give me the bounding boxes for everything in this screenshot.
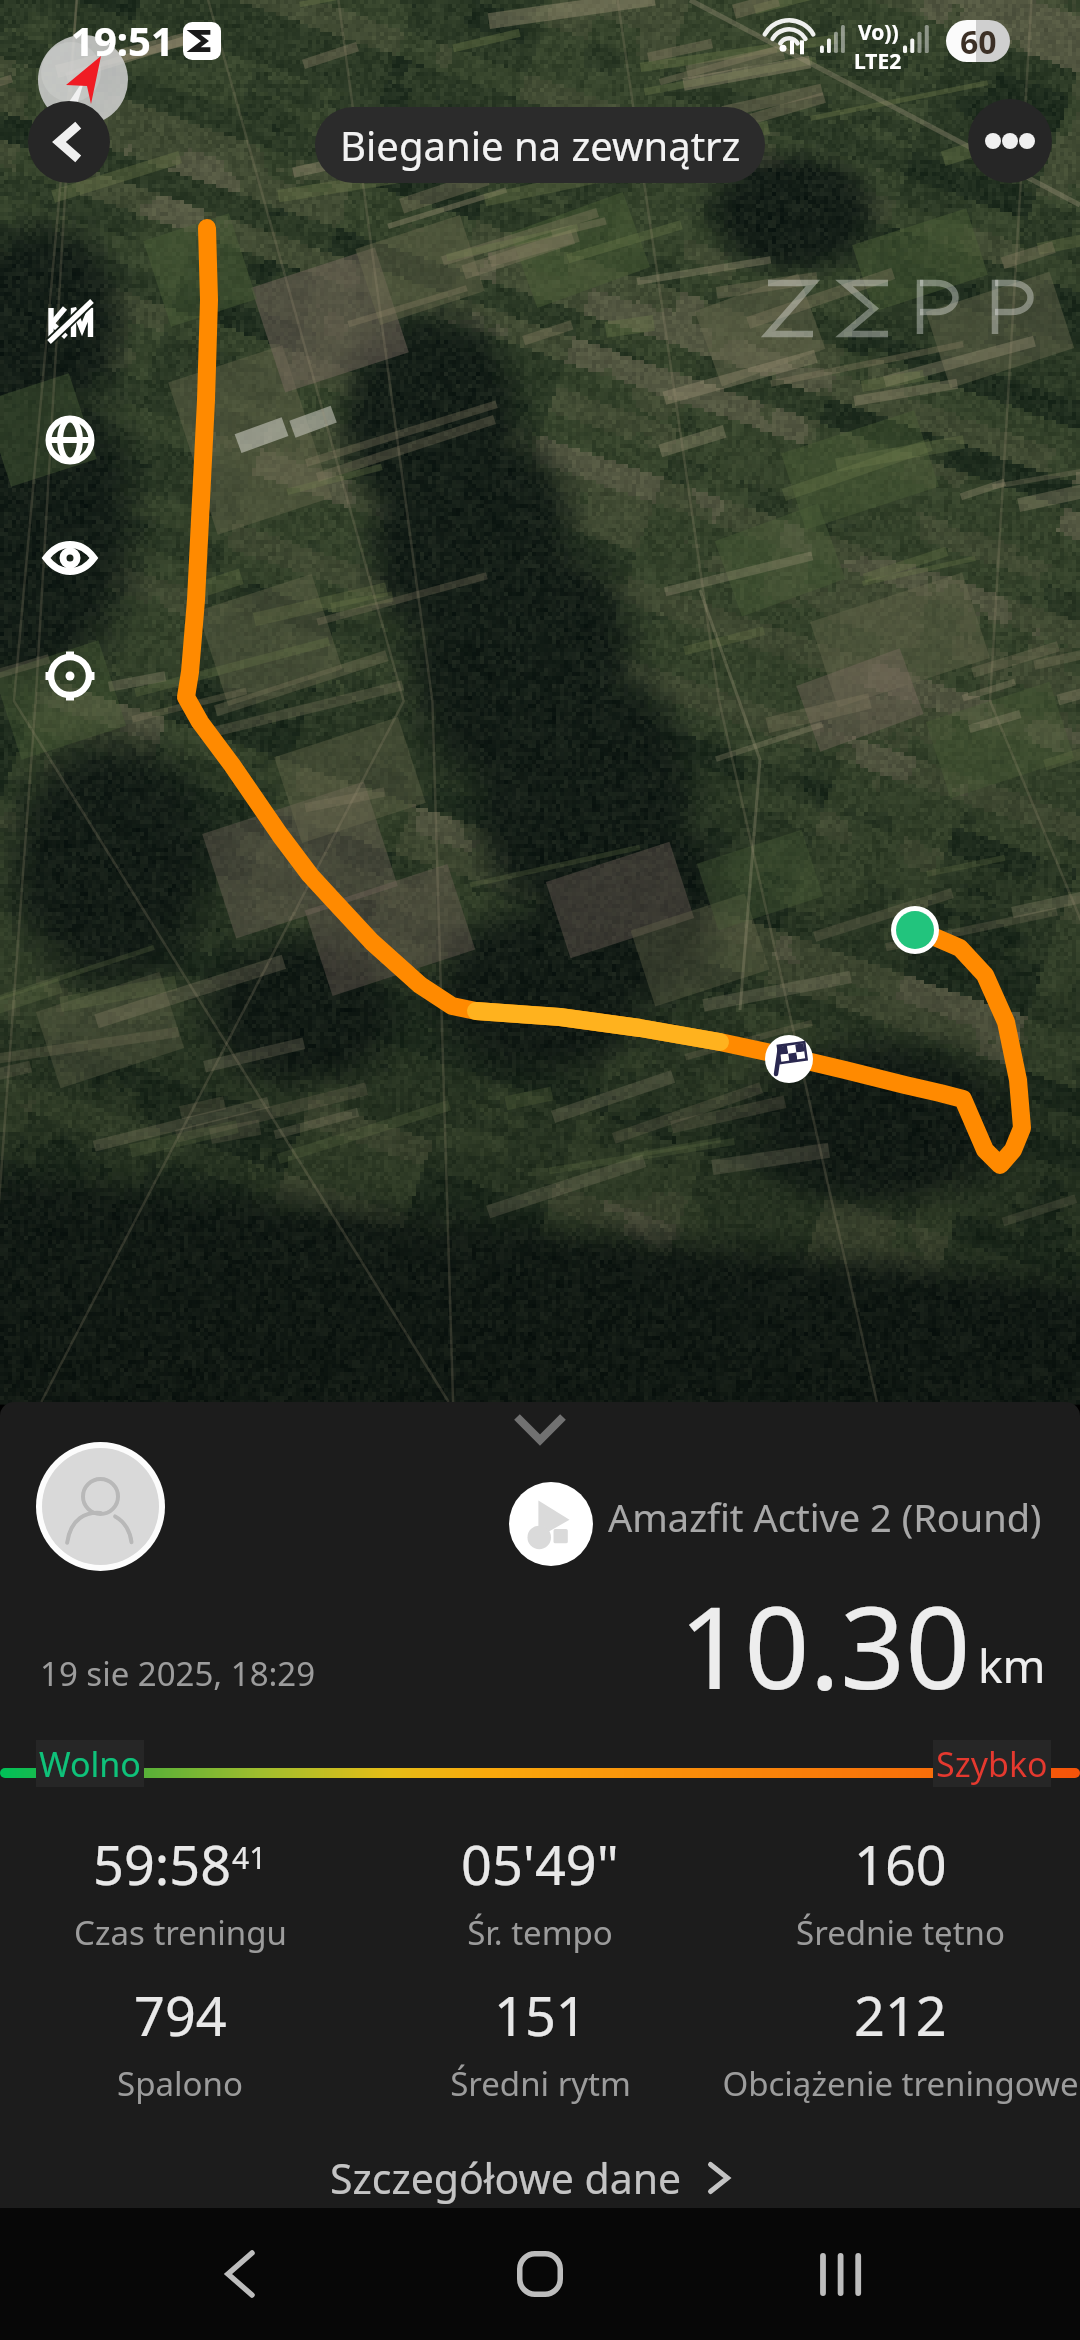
staticText: Vo)): [858, 18, 899, 47]
staticText: 794: [134, 1978, 227, 2052]
button[interactable]: 212: [720, 1978, 1080, 2052]
staticText: Szybko: [936, 1741, 1048, 1787]
staticText: Amazfit Active 2 (Round): [608, 1491, 1042, 1543]
staticText: 160: [854, 1827, 947, 1901]
button[interactable]: Show route: [34, 522, 106, 594]
staticText: Wolno: [39, 1741, 141, 1787]
button[interactable]: 59:58: [0, 1827, 360, 1901]
staticText: Bieganie na zewnątrz: [340, 118, 741, 172]
button[interactable]: 160: [720, 1827, 1080, 1901]
button[interactable]: Collapse: [514, 1414, 566, 1444]
button[interactable]: More options: [968, 99, 1052, 183]
button[interactable]: Compass: [38, 35, 128, 125]
button[interactable]: Center map: [34, 640, 106, 712]
button[interactable]: Recent apps: [790, 2224, 890, 2324]
staticText: Obciążenie treningowe: [722, 2061, 1079, 2106]
button[interactable]: 794: [0, 1978, 360, 2052]
button[interactable]: 151: [360, 1978, 720, 2052]
staticText: 212: [854, 1978, 947, 2052]
button[interactable]: Device: [509, 1482, 593, 1566]
staticText: 05'49": [461, 1827, 619, 1901]
button[interactable]: Units: [34, 286, 106, 358]
staticText: km: [978, 1634, 1046, 1697]
staticText: 41: [232, 1837, 267, 1878]
staticText: LTE2: [854, 47, 902, 76]
staticText: Śr. tempo: [467, 1910, 613, 1955]
staticText: 19:51: [71, 13, 174, 67]
button[interactable]: Map layers: [34, 404, 106, 476]
staticText: 59:58: [93, 1827, 232, 1901]
staticText: Średni rytm: [450, 2061, 631, 2106]
button[interactable]: 05'49": [360, 1827, 720, 1901]
button[interactable]: Back: [28, 101, 110, 183]
button[interactable]: Szczegółowe dane: [316, 2142, 744, 2208]
staticText: 19 sie 2025, 18:29: [40, 1651, 316, 1696]
button[interactable]: Back: [190, 2224, 290, 2324]
staticText: Średnie tętno: [796, 1910, 1005, 1955]
staticText: 151: [494, 1978, 587, 2052]
staticText: Szczegółowe dane: [330, 2150, 682, 2206]
staticText: Spalono: [117, 2061, 243, 2106]
button[interactable]: User profile: [42, 1448, 159, 1565]
button[interactable]: Bieganie na zewnątrz: [315, 107, 765, 183]
staticText: Czas treningu: [74, 1910, 287, 1955]
button[interactable]: Home: [490, 2224, 590, 2324]
staticText: 10.30: [679, 1567, 971, 1722]
staticText: 60: [960, 20, 997, 62]
